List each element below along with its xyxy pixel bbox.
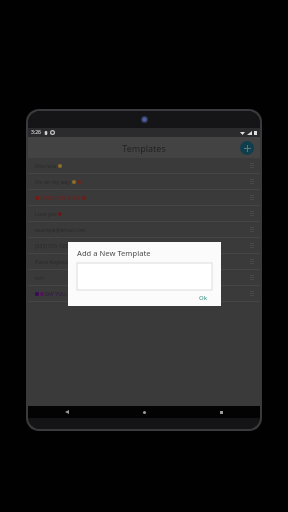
button[interactable]: Miss you: [28, 158, 260, 174]
button[interactable]: Paste Keyboard: [28, 254, 260, 270]
button[interactable]: Home: [106, 406, 183, 418]
button[interactable]: example@email.com: [28, 222, 260, 238]
staticText: Paste Keyboard: [35, 258, 73, 265]
button[interactable]: Ok: [195, 293, 212, 303]
staticText: SAY YOU A: [45, 290, 71, 297]
button[interactable]: Back: [28, 406, 106, 418]
button[interactable]: Recent apps: [183, 406, 260, 418]
staticText: Miss you: [35, 162, 57, 169]
staticText: Ok: [199, 294, 208, 302]
staticText: 3:26: [31, 129, 41, 136]
button[interactable]: Template text field: [77, 263, 212, 290]
staticText: Templates: [122, 142, 166, 154]
staticText: (555) 555-1234: [35, 242, 71, 249]
staticText: Love you: [35, 210, 57, 217]
button[interactable]: SAY YOU A: [28, 286, 260, 302]
staticText: example@email.com: [35, 226, 86, 233]
button[interactable]: I MISS THE RAGE: [28, 190, 260, 206]
staticText: I MISS THE RAGE: [40, 194, 81, 201]
staticText: I'm on my way: [35, 178, 71, 185]
button[interactable]: Love you: [28, 206, 260, 222]
button[interactable]: I'm on my way: [28, 174, 260, 190]
button[interactable]: Add new template: [240, 141, 254, 155]
button[interactable]: (555) 555-1234: [28, 238, 260, 254]
staticText: Add a New Template: [77, 248, 151, 258]
staticText: brrr: [35, 274, 45, 281]
button[interactable]: brrr: [28, 270, 260, 286]
